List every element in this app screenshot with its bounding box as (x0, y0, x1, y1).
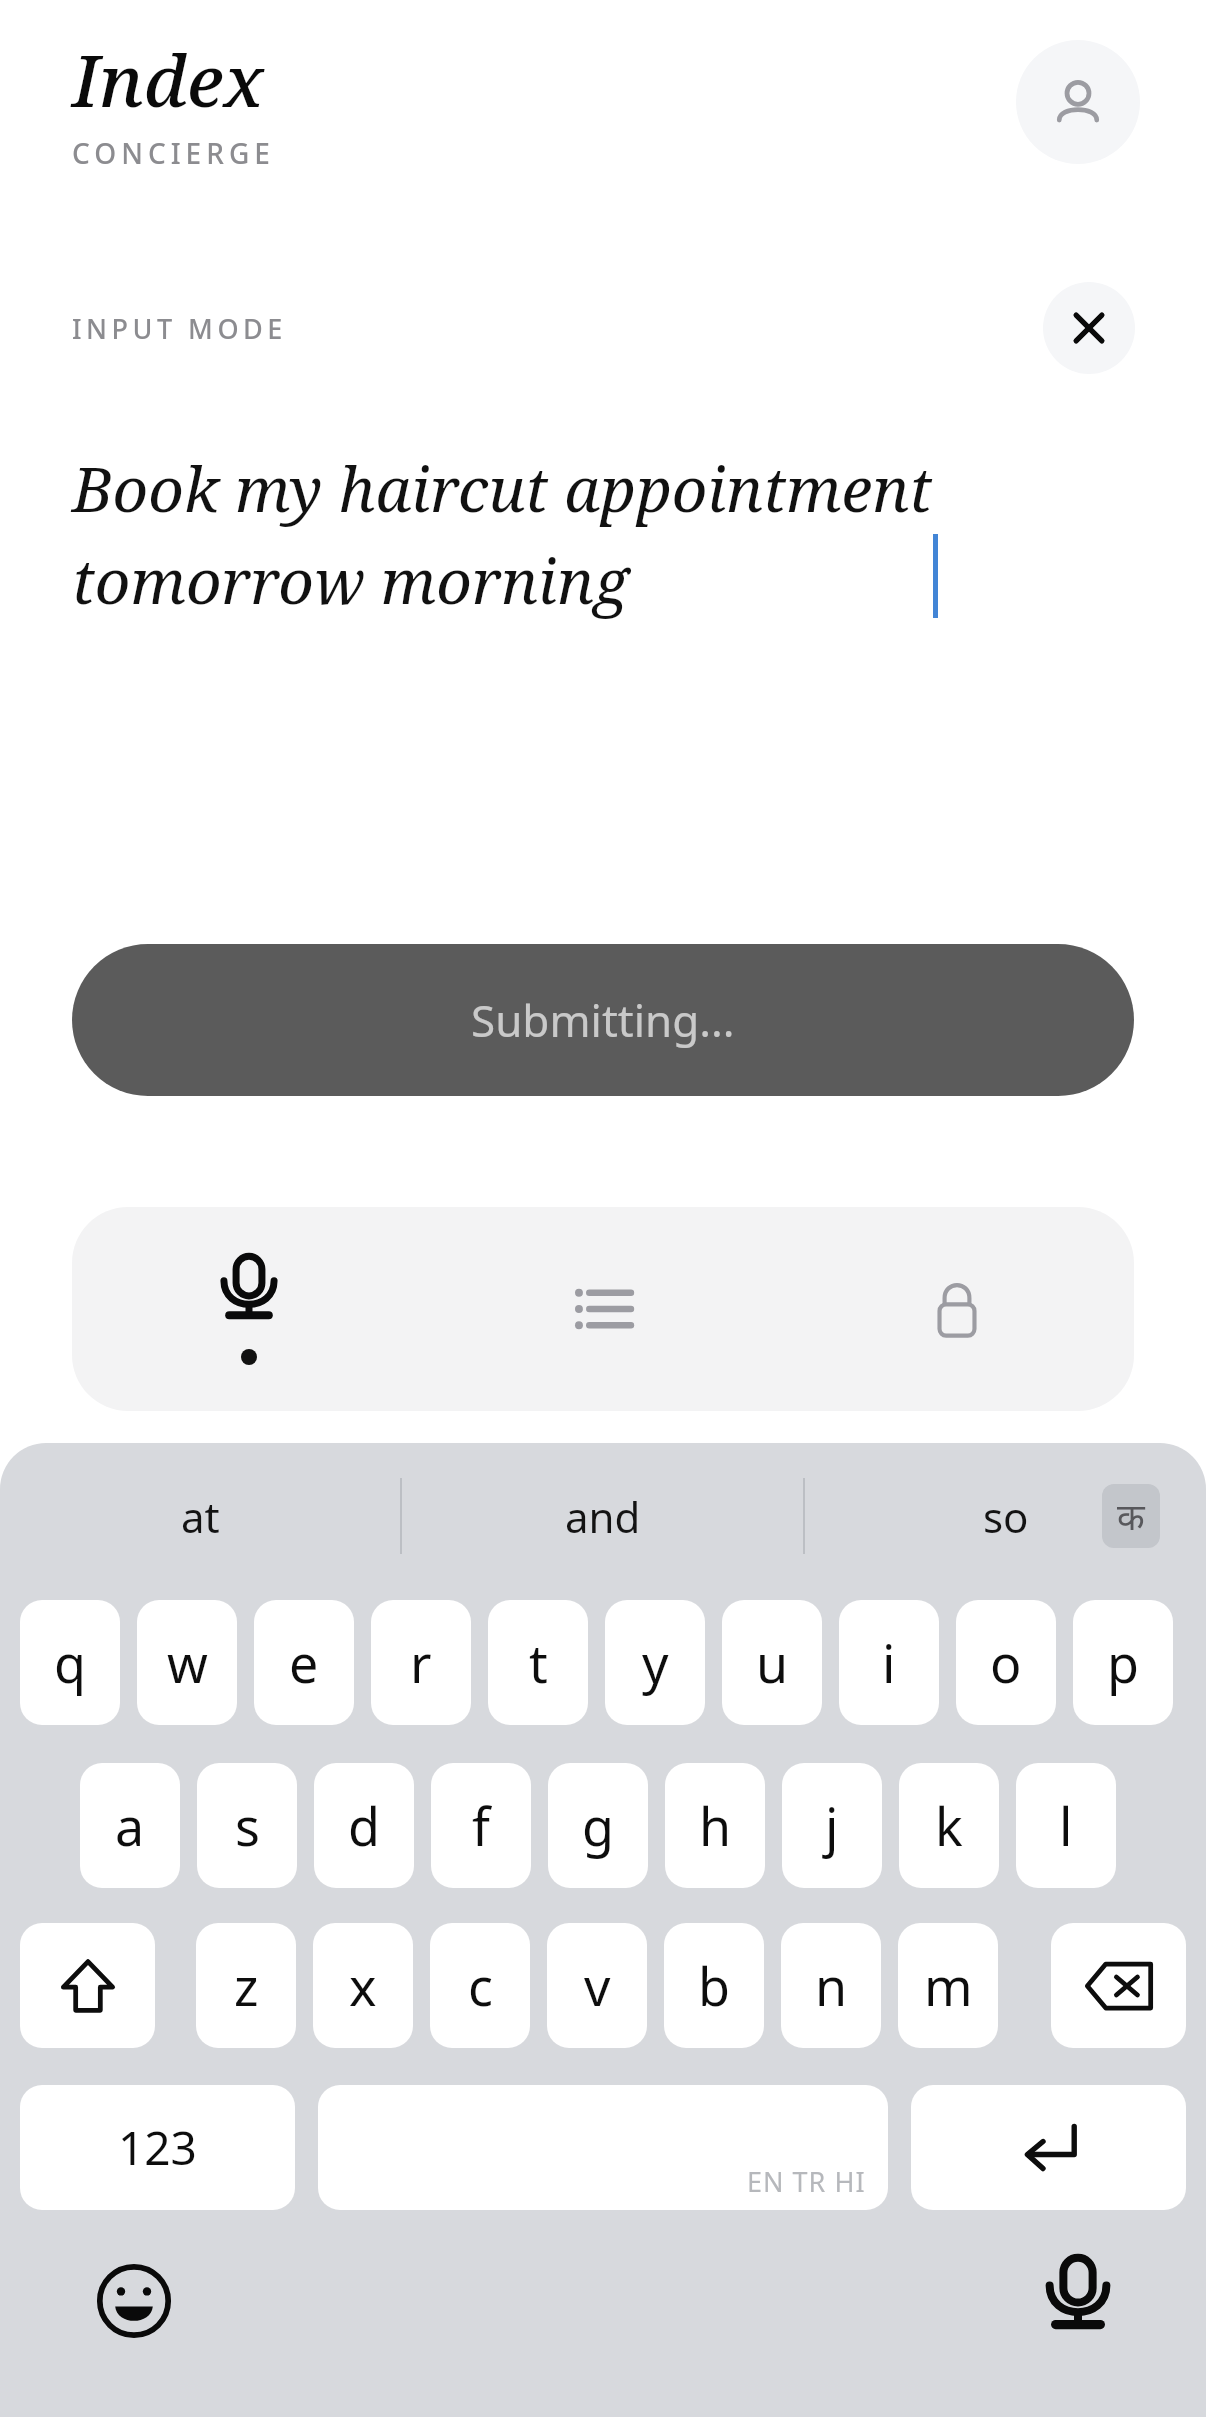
staticText: w (167, 1627, 208, 1698)
staticText: CONCIERGE (72, 134, 275, 172)
button[interactable]: e (254, 1600, 354, 1725)
staticText: q (54, 1627, 86, 1698)
button[interactable]: s (197, 1763, 297, 1888)
button[interactable]: t (488, 1600, 588, 1725)
staticText: z (234, 1950, 259, 2021)
button[interactable]: at (0, 1443, 400, 1589)
button[interactable]: l (1016, 1763, 1116, 1888)
button[interactable]: so (805, 1443, 1206, 1589)
staticText: y (642, 1627, 669, 1698)
button[interactable]: Voice input (72, 1207, 426, 1411)
staticText: v (584, 1950, 611, 2021)
staticText: Book my haircut appointment tomorrow mor… (72, 446, 933, 622)
button[interactable]: y (605, 1600, 705, 1725)
button[interactable]: r (371, 1600, 471, 1725)
staticText: g (582, 1790, 614, 1861)
button[interactable]: w (137, 1600, 237, 1725)
staticText: o (990, 1627, 1022, 1698)
staticText: s (235, 1790, 260, 1861)
button[interactable]: Lock (780, 1207, 1134, 1411)
button[interactable]: and (402, 1443, 803, 1589)
staticText: at (181, 1488, 220, 1545)
button[interactable]: v (547, 1923, 647, 2048)
staticText: and (565, 1488, 641, 1545)
staticText: t (529, 1627, 548, 1698)
button[interactable]: o (956, 1600, 1056, 1725)
button[interactable]: c (430, 1923, 530, 2048)
button[interactable]: Submitting... (72, 944, 1134, 1096)
staticText: c (468, 1950, 493, 2021)
staticText: j (825, 1790, 839, 1861)
staticText: n (815, 1950, 848, 2021)
staticText: f (472, 1790, 490, 1861)
button[interactable]: Backspace (1051, 1923, 1186, 2048)
staticText: d (348, 1790, 380, 1861)
button[interactable]: Space (318, 2085, 888, 2210)
button[interactable]: m (898, 1923, 998, 2048)
staticText: l (1059, 1790, 1073, 1861)
button[interactable]: p (1073, 1600, 1173, 1725)
staticText: b (698, 1950, 730, 2021)
button[interactable]: Close (1043, 282, 1135, 374)
staticText: p (1107, 1627, 1139, 1698)
staticText: u (756, 1627, 789, 1698)
staticText: a (115, 1790, 145, 1861)
button[interactable]: q (20, 1600, 120, 1725)
button[interactable]: f (431, 1763, 531, 1888)
button[interactable]: u (722, 1600, 822, 1725)
button[interactable]: d (314, 1763, 414, 1888)
button[interactable]: a (80, 1763, 180, 1888)
button[interactable]: x (313, 1923, 413, 2048)
button[interactable]: Voice typing (1030, 2253, 1126, 2349)
button[interactable]: Enter (911, 2085, 1186, 2210)
staticText: so (983, 1488, 1029, 1545)
staticText: r (410, 1627, 432, 1698)
button[interactable]: z (196, 1923, 296, 2048)
button[interactable]: List mode (426, 1207, 780, 1411)
button[interactable]: Emoji (86, 2253, 182, 2349)
button[interactable]: k (899, 1763, 999, 1888)
button[interactable]: n (781, 1923, 881, 2048)
button[interactable]: Shift (20, 1923, 155, 2048)
staticText: EN TR HI (747, 2163, 866, 2200)
staticText: e (289, 1627, 319, 1698)
staticText: m (924, 1950, 973, 2021)
staticText: INPUT MODE (72, 310, 287, 347)
button[interactable]: 123 (20, 2085, 295, 2210)
staticText: Submitting... (471, 990, 735, 1050)
staticText: k (935, 1790, 963, 1861)
staticText: क (1117, 1492, 1145, 1541)
button[interactable]: g (548, 1763, 648, 1888)
button[interactable]: Profile (1016, 40, 1140, 164)
staticText: i (882, 1627, 896, 1698)
button[interactable]: j (782, 1763, 882, 1888)
staticText: x (349, 1950, 377, 2021)
button[interactable]: b (664, 1923, 764, 2048)
staticText: Index (72, 30, 264, 128)
staticText: 123 (118, 2116, 197, 2179)
button[interactable]: h (665, 1763, 765, 1888)
staticText: h (699, 1790, 732, 1861)
button[interactable]: i (839, 1600, 939, 1725)
button[interactable]: Language (1102, 1484, 1160, 1548)
